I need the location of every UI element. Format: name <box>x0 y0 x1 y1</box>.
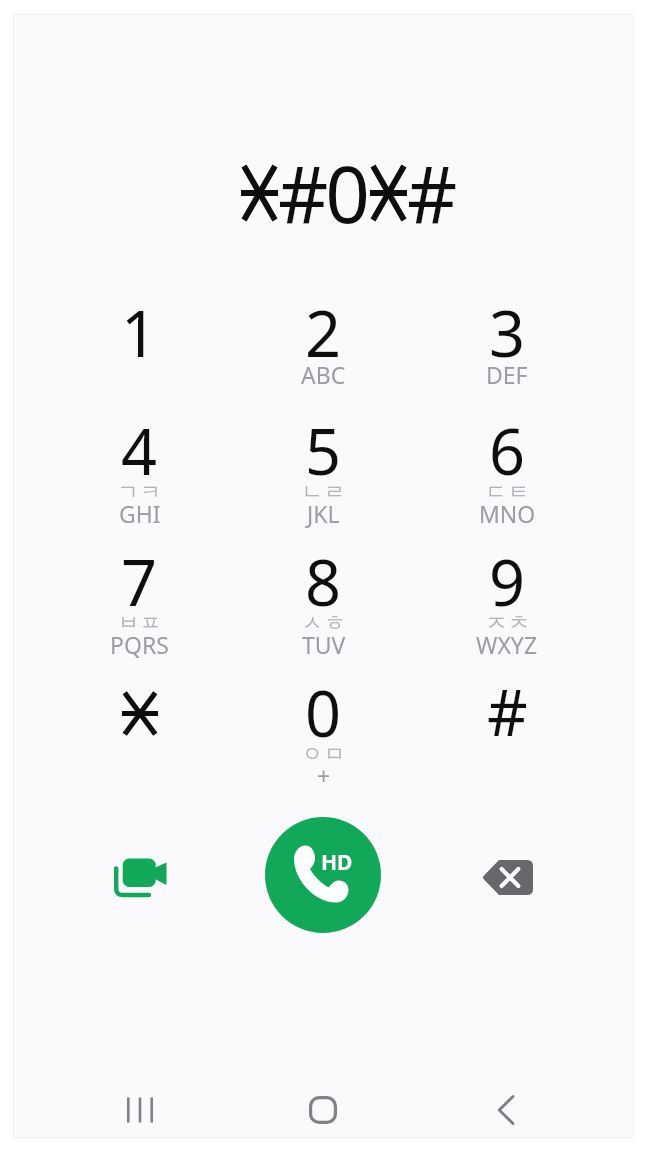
staticText: 7 <box>121 539 158 625</box>
staticText: 0 <box>325 140 370 246</box>
button[interactable]: 0 <box>231 670 415 801</box>
staticText: TUV <box>302 629 346 660</box>
button[interactable]: 5 <box>231 408 415 539</box>
staticText: PQRS <box>110 629 169 660</box>
button[interactable]: Backspace <box>415 810 599 940</box>
staticText: ㄱㅋ <box>117 479 162 505</box>
staticText: MNO <box>479 498 536 529</box>
staticText: ㄴㄹ <box>301 479 346 505</box>
button[interactable]: 9 <box>415 539 599 670</box>
button[interactable] <box>48 670 231 801</box>
button[interactable]: 1 <box>48 277 231 408</box>
button[interactable]: 6 <box>415 408 599 539</box>
staticText: ㅅㅎ <box>301 610 346 636</box>
button[interactable]: Home <box>231 1085 415 1135</box>
button[interactable]: Recent apps <box>48 1085 231 1135</box>
staticText: 2 <box>305 290 342 376</box>
staticText: WXYZ <box>476 629 538 660</box>
staticText: ㅇㅁ <box>301 741 346 767</box>
staticText: # <box>407 140 453 246</box>
staticText: # <box>278 140 324 246</box>
staticText: 8 <box>305 539 342 625</box>
staticText: # <box>487 669 528 755</box>
staticText: ㅂㅍ <box>117 610 162 636</box>
button[interactable]: 3 <box>415 277 599 408</box>
button[interactable]: Call <box>265 817 381 933</box>
button[interactable]: 2 <box>231 277 415 408</box>
button[interactable]: 8 <box>231 539 415 670</box>
staticText: 6 <box>489 408 526 494</box>
staticText: DEF <box>486 359 528 390</box>
staticText: 9 <box>489 539 526 625</box>
button[interactable]: # <box>415 670 599 801</box>
staticText: 0 <box>305 670 342 756</box>
staticText: ㄷㅌ <box>485 479 530 505</box>
staticText: 1 <box>121 290 158 376</box>
button[interactable]: Back <box>415 1085 599 1135</box>
staticText: + <box>317 760 331 791</box>
staticText: HD <box>321 848 353 877</box>
button[interactable]: 7 <box>48 539 231 670</box>
staticText: ㅈㅊ <box>485 610 530 636</box>
staticText: JKL <box>307 498 340 529</box>
staticText: ABC <box>301 359 346 390</box>
staticText: 4 <box>121 408 158 494</box>
button[interactable]: 4 <box>48 408 231 539</box>
staticText: 5 <box>305 408 342 494</box>
button[interactable]: Video call <box>48 810 231 940</box>
staticText: GHI <box>119 498 161 529</box>
staticText: 3 <box>489 290 526 376</box>
